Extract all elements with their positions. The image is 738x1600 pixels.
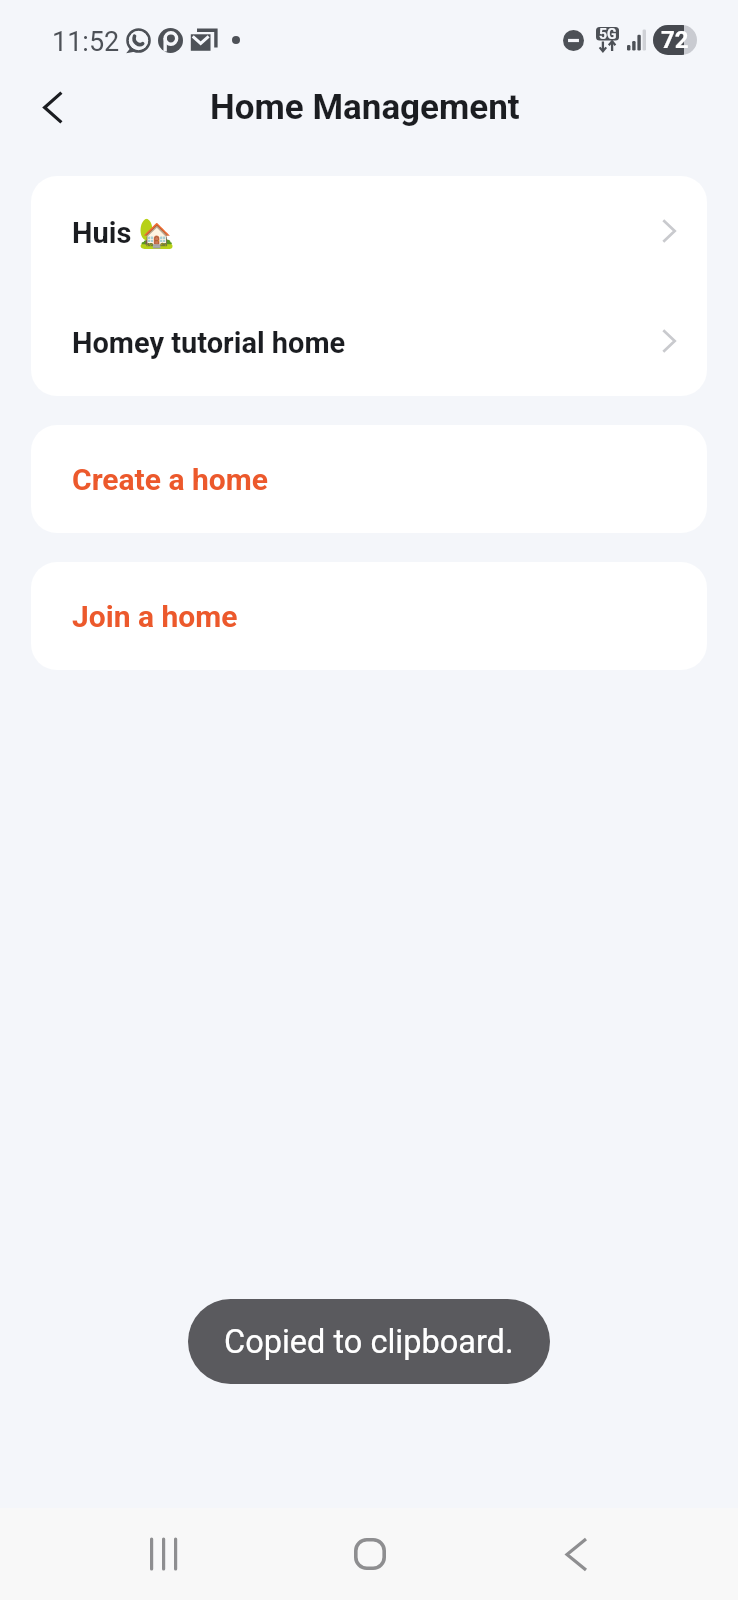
button[interactable]: Back [24, 78, 82, 136]
staticText: 5G [599, 26, 617, 41]
staticText: Home Management [210, 87, 520, 128]
staticText: Create a home [72, 462, 268, 497]
button[interactable]: Home [330, 1508, 410, 1600]
button[interactable]: Join a home [31, 562, 707, 670]
button[interactable]: Create a home [31, 425, 707, 533]
staticText: Join a home [72, 599, 238, 634]
staticText: 72 [661, 26, 689, 54]
button[interactable]: Huis 🏡 [31, 176, 707, 286]
staticText: Copied to clipboard. [224, 1323, 514, 1361]
staticText: Homey tutorial home [72, 326, 346, 360]
button[interactable]: Homey tutorial home [31, 286, 707, 396]
staticText: 11:52 [52, 26, 120, 58]
button[interactable]: Back [536, 1508, 616, 1600]
button[interactable]: Recent apps [123, 1508, 203, 1600]
staticText: Huis 🏡 [72, 216, 175, 250]
